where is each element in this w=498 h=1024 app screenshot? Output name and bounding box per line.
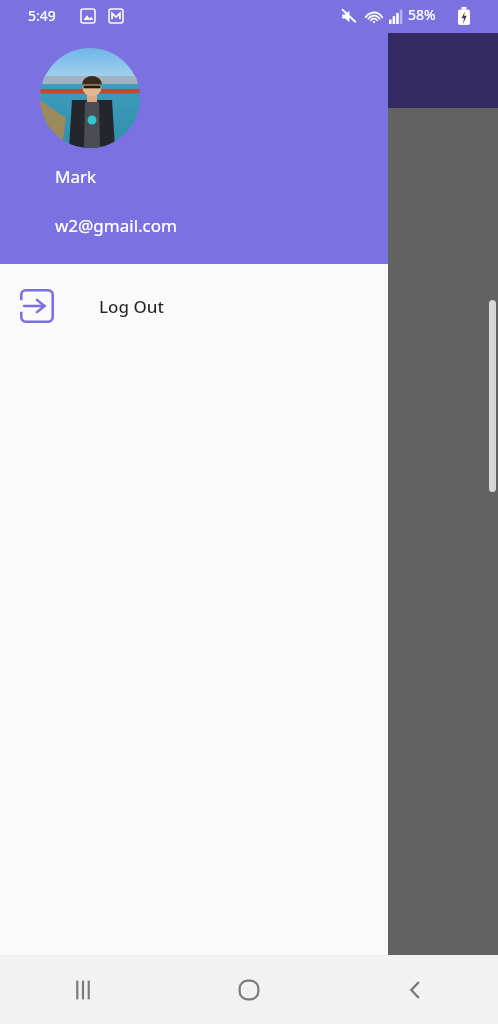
button[interactable]: Back — [332, 955, 498, 1024]
button[interactable]: Recent apps — [0, 955, 166, 1024]
staticText: Log Out — [99, 295, 164, 318]
staticText: w2@gmail.com — [55, 214, 177, 237]
button[interactable]: Log Out — [0, 264, 388, 348]
button[interactable]: Profile photo — [40, 48, 140, 148]
staticText: 58% — [408, 5, 436, 24]
button[interactable]: Home — [166, 955, 332, 1024]
staticText: 5:49 — [28, 6, 56, 25]
staticText: Mark — [55, 165, 97, 188]
